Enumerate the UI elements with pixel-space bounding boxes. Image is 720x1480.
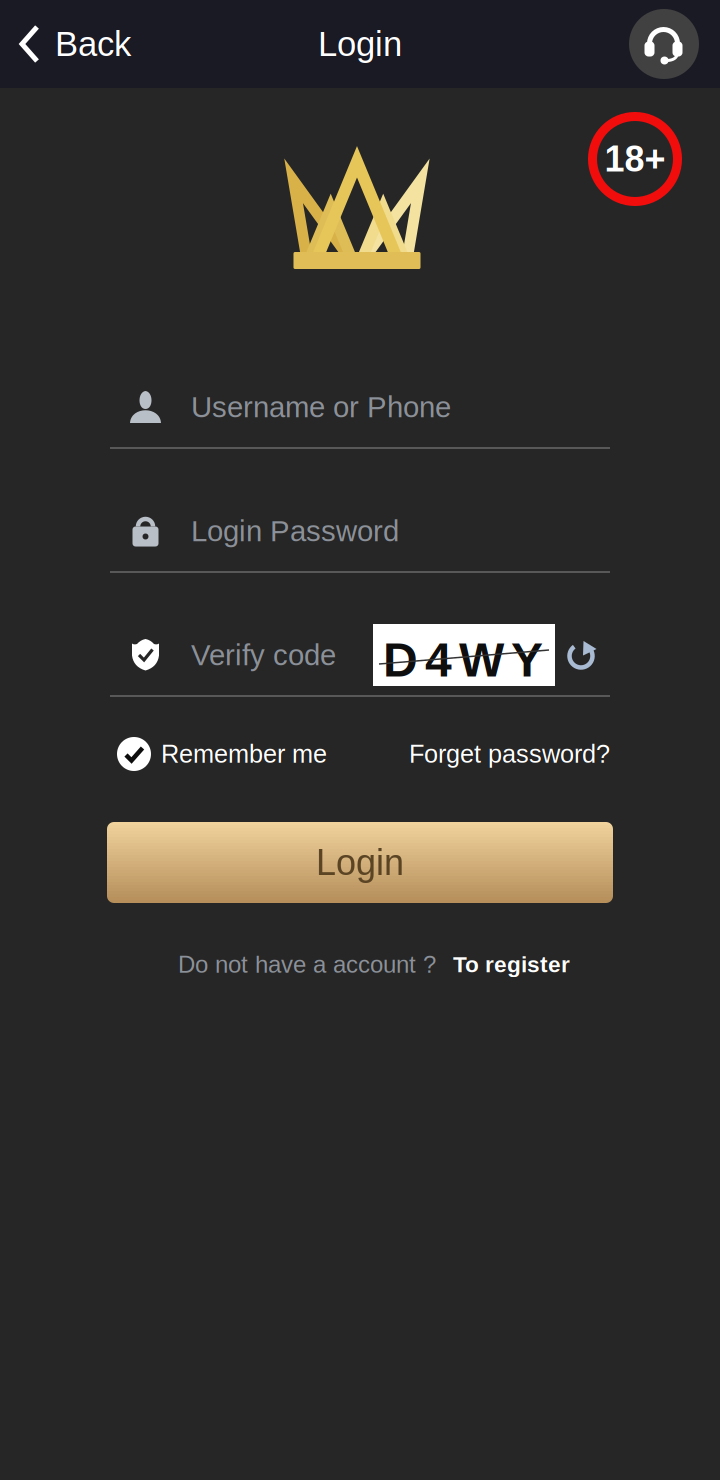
staticText: 18+ xyxy=(604,139,665,179)
staticText: Back xyxy=(55,25,131,63)
staticText: Login Password xyxy=(191,515,399,547)
staticText: To register xyxy=(453,952,570,977)
button[interactable]: To register xyxy=(436,952,570,977)
button[interactable]: Back xyxy=(0,0,145,88)
button[interactable]: Login xyxy=(107,822,613,903)
button[interactable]: Customer support xyxy=(620,0,708,88)
staticText: Forget password? xyxy=(409,740,610,768)
button[interactable]: Refresh verification code xyxy=(566,639,597,671)
staticText: Login xyxy=(318,25,402,63)
button[interactable]: Remember me xyxy=(117,728,327,780)
staticText: Do not have a account ? xyxy=(178,951,436,978)
staticText: Login xyxy=(316,842,404,883)
button[interactable]: Forget password? xyxy=(409,728,610,780)
staticText: D4WY xyxy=(383,633,543,687)
staticText: Username or Phone xyxy=(191,391,451,423)
staticText: Verify code xyxy=(191,639,336,671)
staticText: Remember me xyxy=(161,740,327,768)
